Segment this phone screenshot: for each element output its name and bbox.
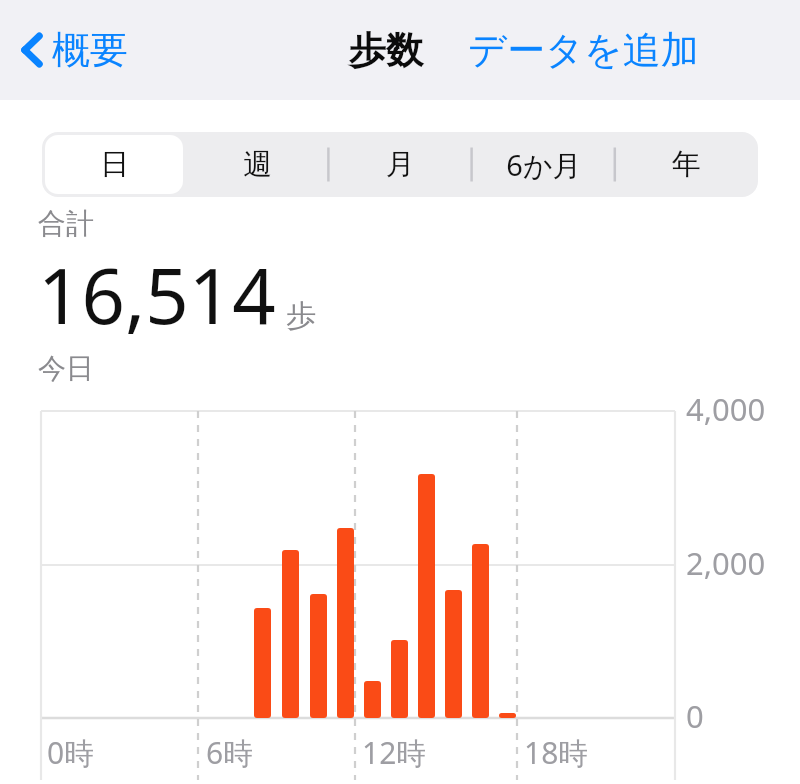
staticText: 0時 — [47, 732, 95, 773]
button[interactable]: データを追加 — [462, 18, 705, 82]
staticText: 6時 — [206, 732, 254, 773]
staticText: 18時 — [524, 732, 589, 773]
button[interactable]: Back — [12, 18, 134, 82]
button[interactable]: 6か月 — [475, 135, 612, 194]
staticText: 0 — [686, 695, 704, 737]
staticText: 6か月 — [506, 145, 582, 185]
button[interactable]: 年 — [618, 135, 755, 194]
staticText: 年 — [672, 146, 701, 183]
staticText: 今日 — [38, 351, 94, 386]
button[interactable]: 月 — [332, 135, 469, 194]
staticText: 2,000 — [686, 542, 766, 584]
other: Back — [18, 28, 46, 72]
staticText: 12時 — [362, 732, 427, 773]
staticText: 月 — [386, 146, 415, 183]
staticText: 16,514 — [38, 243, 276, 347]
staticText: 概要 — [52, 26, 128, 74]
staticText: 4,000 — [686, 388, 766, 430]
staticText: 日 — [100, 146, 129, 183]
button[interactable]: 週 — [189, 135, 326, 194]
button[interactable]: 日 — [45, 135, 183, 194]
staticText: 歩 — [286, 297, 316, 335]
staticText: 合計 — [38, 206, 94, 241]
staticText: データを追加 — [468, 26, 699, 74]
staticText: 歩数 — [349, 27, 423, 74]
staticText: 週 — [243, 146, 272, 183]
